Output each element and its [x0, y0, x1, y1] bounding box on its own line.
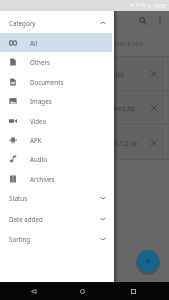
- button[interactable]: Others: [0, 52, 112, 71]
- staticText: Audio: [30, 155, 47, 163]
- staticText: Category: [9, 19, 36, 27]
- button[interactable]: Back: [26, 284, 40, 298]
- button[interactable]: Documents: [0, 72, 112, 91]
- button[interactable]: Archives: [0, 169, 112, 188]
- staticText: 9-1.2.iar: [114, 139, 138, 147]
- staticText: Others: [30, 58, 50, 66]
- button[interactable]: Cancel download: [147, 67, 161, 81]
- button[interactable]: All: [0, 33, 112, 52]
- staticText: Images: [30, 97, 52, 105]
- button[interactable]: Home: [75, 284, 89, 298]
- staticText: APK: [30, 136, 42, 144]
- button[interactable]: Audio: [0, 149, 112, 168]
- button[interactable]: Cancel download: [147, 136, 161, 150]
- button[interactable]: Date added: [0, 209, 114, 228]
- staticText: .iso: [114, 70, 124, 78]
- button[interactable]: Recents: [126, 284, 140, 298]
- button[interactable]: Category: [0, 13, 114, 32]
- button[interactable]: APK: [0, 130, 112, 149]
- button[interactable]: Video: [0, 111, 112, 130]
- button[interactable]: ned.zip: [0, 91, 169, 125]
- button[interactable]: Images: [0, 91, 112, 110]
- staticText: Status: [9, 194, 28, 202]
- button[interactable]: .iso: [0, 57, 169, 91]
- button[interactable]: Status: [0, 188, 114, 207]
- button[interactable]: Add download: [137, 250, 159, 272]
- staticText: 91%: [136, 2, 146, 9]
- button[interactable]: Search: [134, 12, 151, 29]
- staticText: 18:55: [153, 2, 167, 9]
- staticText: Archives: [30, 175, 55, 183]
- staticText: Date added: [9, 215, 43, 223]
- staticText: Video: [30, 117, 47, 125]
- staticText: Sorting: [9, 235, 31, 243]
- staticText: All: [30, 39, 38, 47]
- button[interactable]: Cancel download: [147, 101, 161, 115]
- button[interactable]: Sorting: [0, 229, 114, 248]
- button[interactable]: 9-1.2.iar: [0, 126, 169, 160]
- staticText: COMPLETED: [105, 40, 144, 48]
- staticText: ned.zip: [114, 104, 136, 112]
- staticText: Documents: [30, 78, 64, 86]
- button[interactable]: More options: [152, 12, 168, 28]
